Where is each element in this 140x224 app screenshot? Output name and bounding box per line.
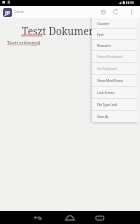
button[interactable]: Counter bbox=[92, 18, 137, 28]
button[interactable]: No Keyboard bbox=[92, 63, 137, 74]
button[interactable]: File Type (.txt) bbox=[92, 99, 137, 110]
button[interactable]: Recent apps bbox=[93, 211, 107, 224]
staticText: Teszt szöveggel bbox=[7, 40, 41, 46]
staticText: Save As bbox=[97, 114, 109, 119]
button[interactable]: Extend Keyboard bbox=[92, 51, 137, 62]
staticText: 2 words bbox=[14, 10, 24, 14]
button[interactable]: Save As bbox=[92, 111, 137, 122]
button[interactable]: Document icon bbox=[3, 8, 12, 17]
staticText: JP bbox=[5, 9, 11, 17]
button[interactable]: Back bbox=[32, 211, 46, 224]
staticText: No Keyboard bbox=[97, 66, 117, 71]
button[interactable]: Research bbox=[92, 40, 137, 50]
staticText: File Type (.txt) bbox=[97, 102, 117, 107]
staticText: Extend Keyboard bbox=[97, 54, 123, 59]
staticText: Lock Screen bbox=[97, 90, 115, 95]
staticText: Research bbox=[97, 43, 111, 48]
button[interactable]: Home bbox=[63, 211, 77, 224]
button[interactable]: Show MarkDown bbox=[92, 75, 137, 86]
button[interactable]: Find bbox=[92, 29, 137, 39]
button[interactable]: Lock Screen bbox=[92, 87, 137, 98]
staticText: Find bbox=[97, 32, 104, 37]
staticText: Counter bbox=[97, 21, 110, 26]
staticText: Show MarkDown bbox=[97, 78, 123, 83]
staticText: Teszt Dokumentum bbox=[22, 24, 115, 38]
